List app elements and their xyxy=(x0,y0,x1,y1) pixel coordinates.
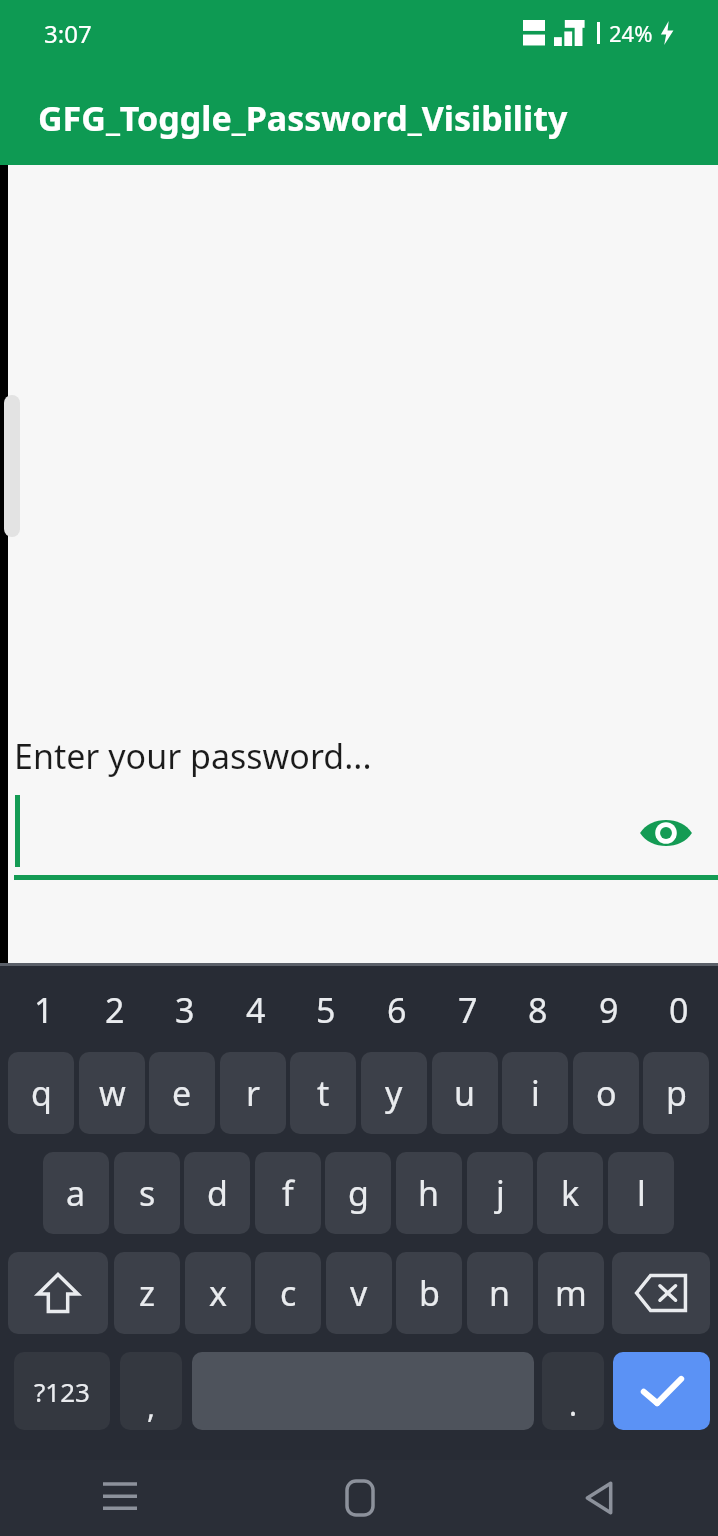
staticText: v xyxy=(350,1270,368,1316)
staticText: GFG_Toggle_Password_Visibility xyxy=(38,95,568,141)
button[interactable]: l xyxy=(608,1152,674,1234)
button[interactable]: p xyxy=(643,1052,709,1134)
button[interactable]: 7 xyxy=(432,968,503,1052)
button[interactable]: n xyxy=(467,1252,533,1334)
button[interactable]: 6 xyxy=(361,968,432,1052)
staticText: z xyxy=(139,1270,155,1316)
button[interactable]: j xyxy=(467,1152,533,1234)
staticText: d xyxy=(207,1170,228,1216)
button[interactable]: i xyxy=(502,1052,568,1134)
button[interactable]: 0 xyxy=(643,968,714,1052)
staticText: 8 xyxy=(528,987,548,1033)
button[interactable]: g xyxy=(325,1152,391,1234)
staticText: y xyxy=(385,1070,403,1116)
button[interactable]: f xyxy=(255,1152,321,1234)
staticText: a xyxy=(66,1170,86,1216)
button[interactable]: w xyxy=(79,1052,145,1134)
button[interactable]: Toggle password visibility xyxy=(634,801,698,865)
staticText: s xyxy=(139,1170,156,1216)
button[interactable]: y xyxy=(361,1052,427,1134)
staticText: j xyxy=(496,1170,505,1216)
button[interactable]: k xyxy=(537,1152,603,1234)
button[interactable]: 5 xyxy=(290,968,361,1052)
staticText: r xyxy=(246,1070,261,1116)
staticText: ?123 xyxy=(34,1374,90,1409)
staticText: 3:07 xyxy=(44,17,92,50)
staticText: h xyxy=(418,1170,440,1216)
staticText: x xyxy=(209,1270,227,1316)
button[interactable]: ?123 xyxy=(14,1352,110,1430)
button[interactable]: Recents xyxy=(0,1460,240,1536)
staticText: 4 xyxy=(246,987,266,1033)
button[interactable]: Home xyxy=(240,1460,479,1536)
button[interactable]: m xyxy=(538,1252,604,1334)
button[interactable]: 1 xyxy=(8,968,79,1052)
staticText: 3 xyxy=(175,987,195,1033)
staticText: 5 xyxy=(316,987,336,1033)
staticText: 6 xyxy=(387,987,407,1033)
button[interactable]: x xyxy=(185,1252,251,1334)
staticText: t xyxy=(317,1070,330,1116)
button[interactable]: s xyxy=(114,1152,180,1234)
staticText: c xyxy=(280,1270,297,1316)
button[interactable]: Backspace xyxy=(612,1252,710,1334)
staticText: . xyxy=(569,1384,578,1425)
button[interactable]: o xyxy=(573,1052,639,1134)
button[interactable]: . xyxy=(542,1352,604,1430)
staticText: 1 xyxy=(34,987,54,1033)
staticText: b xyxy=(419,1270,440,1316)
button[interactable]: Enter xyxy=(613,1352,710,1430)
button[interactable]: 2 xyxy=(79,968,150,1052)
staticText: m xyxy=(555,1270,587,1316)
button[interactable]: q xyxy=(8,1052,74,1134)
staticText: g xyxy=(348,1170,369,1216)
button[interactable]: b xyxy=(396,1252,462,1334)
staticText: 7 xyxy=(458,987,478,1033)
button[interactable]: h xyxy=(396,1152,462,1234)
button[interactable]: d xyxy=(184,1152,250,1234)
button[interactable]: v xyxy=(326,1252,392,1334)
button[interactable]: e xyxy=(149,1052,215,1134)
staticText: u xyxy=(454,1070,476,1116)
button[interactable]: r xyxy=(220,1052,286,1134)
button[interactable]: Shift xyxy=(8,1252,108,1334)
button[interactable]: u xyxy=(432,1052,498,1134)
button[interactable]: 9 xyxy=(573,968,644,1052)
button[interactable]: t xyxy=(290,1052,356,1134)
staticText: , xyxy=(147,1386,156,1427)
button[interactable]: z xyxy=(114,1252,180,1334)
staticText: 24% xyxy=(609,18,653,48)
staticText: 2 xyxy=(105,987,125,1033)
staticText: 9 xyxy=(599,987,619,1033)
staticText: p xyxy=(666,1070,687,1116)
staticText: w xyxy=(99,1070,126,1116)
staticText: f xyxy=(282,1170,294,1216)
staticText: l xyxy=(637,1170,646,1216)
button[interactable]: , xyxy=(120,1352,182,1430)
button[interactable]: Back xyxy=(479,1460,718,1536)
staticText: q xyxy=(31,1070,52,1116)
staticText: n xyxy=(489,1270,511,1316)
staticText: i xyxy=(531,1070,540,1116)
button[interactable]: a xyxy=(43,1152,109,1234)
staticText: Enter your password... xyxy=(14,733,372,779)
button[interactable]: Toggle password visibility xyxy=(0,785,718,881)
staticText: k xyxy=(561,1170,580,1216)
button[interactable]: c xyxy=(255,1252,321,1334)
button[interactable]: 8 xyxy=(502,968,573,1052)
staticText: e xyxy=(172,1070,192,1116)
staticText: o xyxy=(596,1070,617,1116)
button[interactable]: 3 xyxy=(149,968,220,1052)
staticText: 0 xyxy=(669,987,689,1033)
button[interactable]: 4 xyxy=(220,968,291,1052)
